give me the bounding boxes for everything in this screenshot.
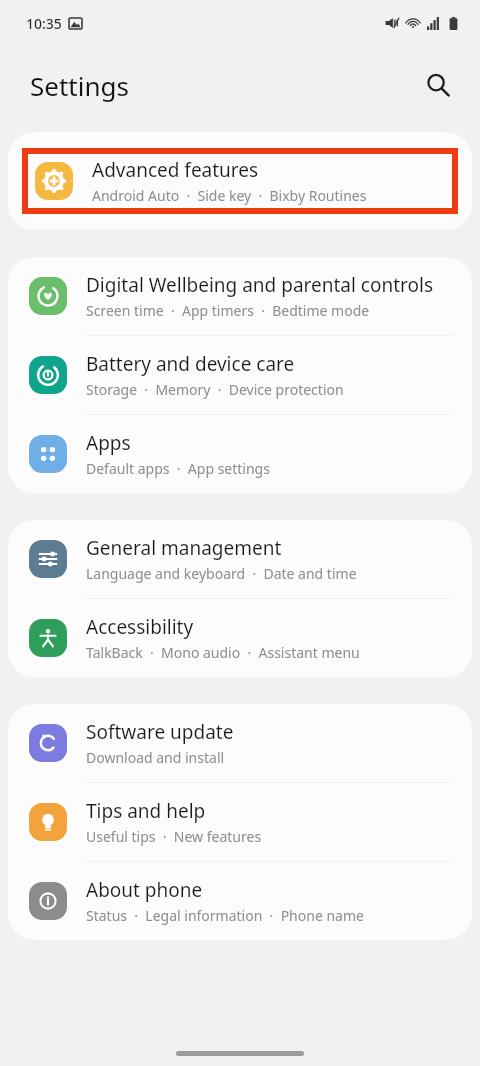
button[interactable]: General management <box>8 520 472 598</box>
staticText: Screen time · App timers · Bedtime mode <box>86 301 370 320</box>
button[interactable]: About phone <box>8 862 472 940</box>
staticText: Settings <box>30 68 129 103</box>
staticText: Accessibility <box>86 614 194 640</box>
button[interactable]: Apps <box>8 415 472 493</box>
staticText: About phone <box>86 877 203 903</box>
staticText: Advanced features <box>92 157 259 183</box>
staticText: TalkBack · Mono audio · Assistant menu <box>86 643 360 662</box>
staticText: Download and install <box>86 748 225 767</box>
staticText: Tips and help <box>86 798 206 824</box>
staticText: Default apps · App settings <box>86 459 270 478</box>
staticText: 10:35 <box>26 14 62 33</box>
staticText: Software update <box>86 719 234 745</box>
staticText: Android Auto · Side key · Bixby Routines <box>92 186 367 205</box>
staticText: Storage · Memory · Device protection <box>86 380 344 399</box>
button[interactable]: Software update <box>8 704 472 782</box>
staticText: Battery and device care <box>86 351 295 377</box>
button[interactable]: Search <box>414 61 462 109</box>
staticText: Digital Wellbeing and parental controls <box>86 272 434 298</box>
staticText: General management <box>86 535 282 561</box>
button[interactable]: Tips and help <box>8 783 472 861</box>
button[interactable]: Battery and device care <box>8 336 472 414</box>
staticText: Status · Legal information · Phone name <box>86 906 364 925</box>
staticText: Useful tips · New features <box>86 827 262 846</box>
staticText: Apps <box>86 430 131 456</box>
button[interactable]: Advanced features <box>28 154 452 208</box>
button[interactable]: Digital Wellbeing and parental controls <box>8 257 472 335</box>
staticText: Language and keyboard · Date and time <box>86 564 357 583</box>
button[interactable]: Accessibility <box>8 599 472 677</box>
